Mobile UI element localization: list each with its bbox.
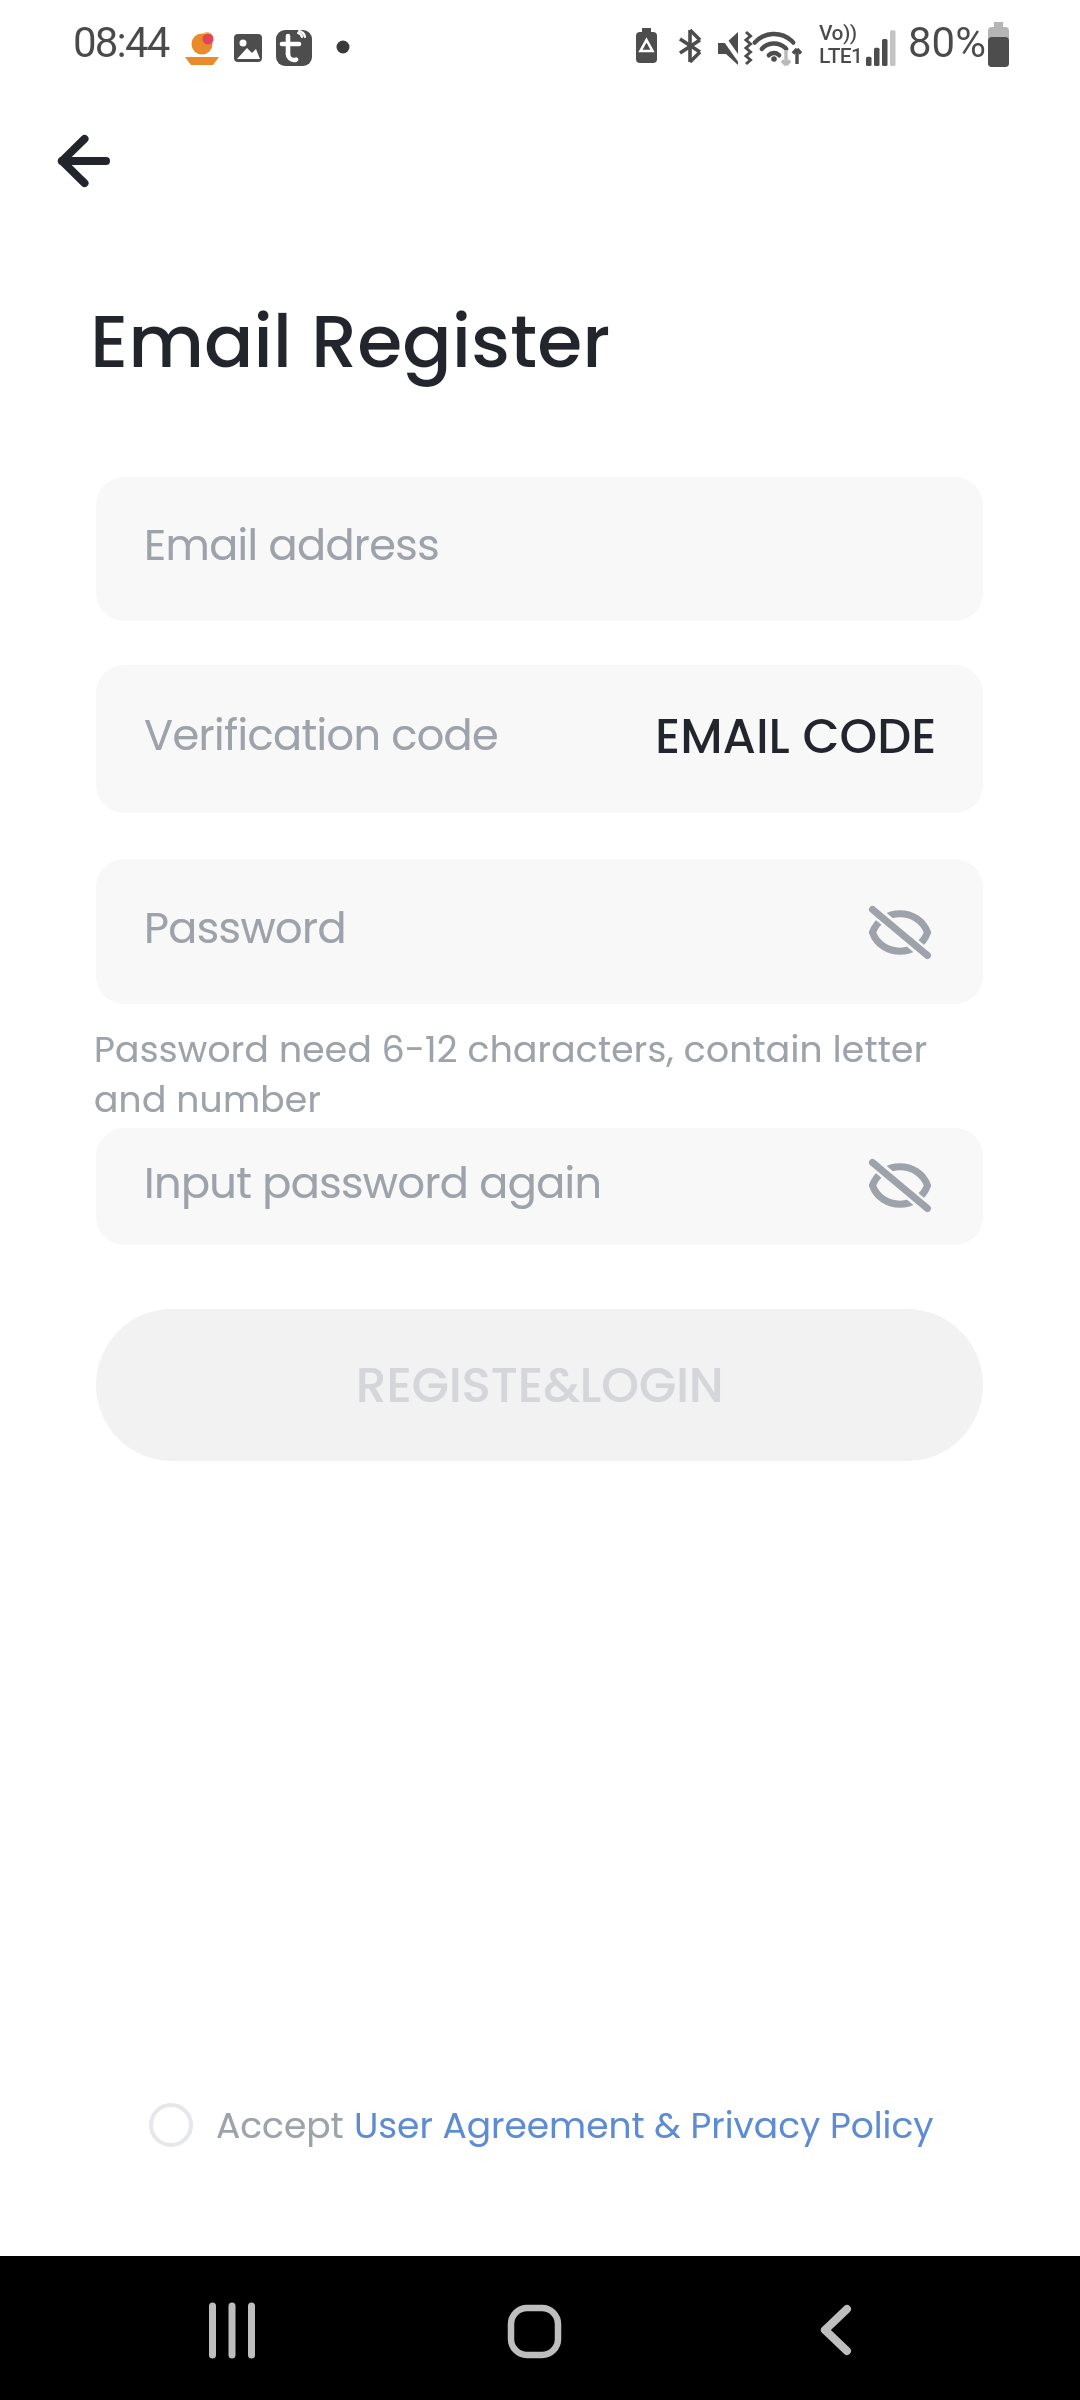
button[interactable]: Verification code (96, 665, 983, 813)
button[interactable]: REGISTE&LOGIN (96, 1309, 983, 1461)
staticText: Accept (216, 2100, 354, 2150)
staticText: REGISTE&LOGIN (356, 1352, 724, 1419)
button[interactable]: Back (38, 116, 128, 206)
staticText: LTE1 (819, 44, 863, 69)
staticText: Password need 6-12 characters, contain l… (94, 1024, 942, 1125)
button[interactable]: Password (96, 859, 983, 1004)
button[interactable]: Email address (96, 477, 983, 621)
staticText: Email address (144, 515, 440, 575)
button[interactable]: Home (484, 2259, 584, 2400)
staticText: Input password again (144, 1153, 602, 1213)
staticText: User Agreement & Privacy Policy (354, 2100, 934, 2150)
button[interactable]: EMAIL CODE (655, 665, 983, 813)
staticText: Email Register (90, 290, 611, 392)
button[interactable]: Back (786, 2258, 886, 2400)
button[interactable]: Accept agreement (140, 2094, 202, 2156)
staticText: Verification code (144, 705, 499, 765)
staticText: Password (144, 898, 346, 958)
staticText: 08:44 (73, 18, 169, 67)
button[interactable]: Input password again (96, 1128, 983, 1245)
staticText: EMAIL CODE (655, 703, 937, 770)
button[interactable]: User Agreement & Privacy Policy (354, 2100, 934, 2150)
staticText: Vo)) (819, 21, 857, 46)
button[interactable]: Toggle password visibility (856, 1141, 944, 1229)
button[interactable]: Toggle password visibility (856, 888, 944, 976)
staticText: 80% (908, 18, 986, 67)
button[interactable]: Recents (182, 2258, 282, 2400)
